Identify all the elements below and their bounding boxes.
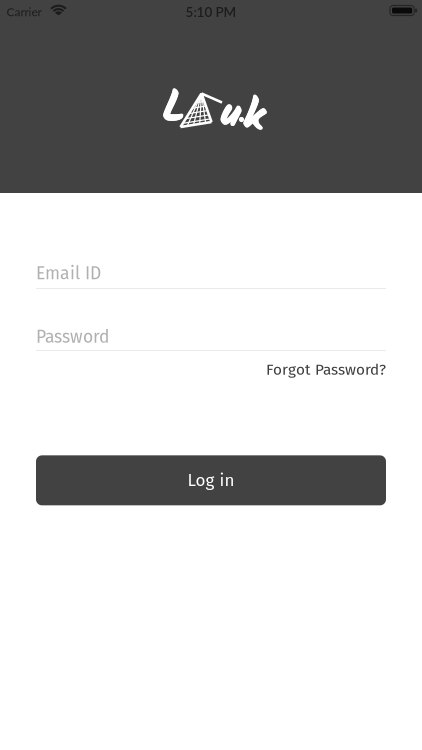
staticText: Carrier	[6, 4, 41, 19]
staticText: Forgot Password?	[266, 360, 386, 379]
staticText: 5:10 PM	[185, 4, 236, 20]
staticText: u	[222, 85, 240, 146]
staticText: u	[221, 85, 239, 146]
button[interactable]: Password	[36, 326, 386, 351]
staticText: Password	[36, 326, 109, 347]
staticText: L	[163, 76, 186, 145]
staticText: L	[162, 76, 185, 144]
staticText: k	[243, 84, 264, 151]
staticText: k	[244, 85, 265, 152]
staticText: L	[163, 76, 186, 144]
staticText: k	[244, 84, 265, 151]
button[interactable]: Forgot Password?	[266, 360, 386, 379]
staticText: Email ID	[36, 263, 101, 284]
button[interactable]: Log in	[36, 455, 386, 505]
staticText: k	[243, 85, 264, 152]
staticText: Log in	[187, 470, 234, 491]
staticText: u	[222, 84, 240, 145]
staticText: L	[162, 76, 185, 145]
staticText: u	[221, 84, 239, 145]
button[interactable]: Email ID	[36, 263, 386, 289]
